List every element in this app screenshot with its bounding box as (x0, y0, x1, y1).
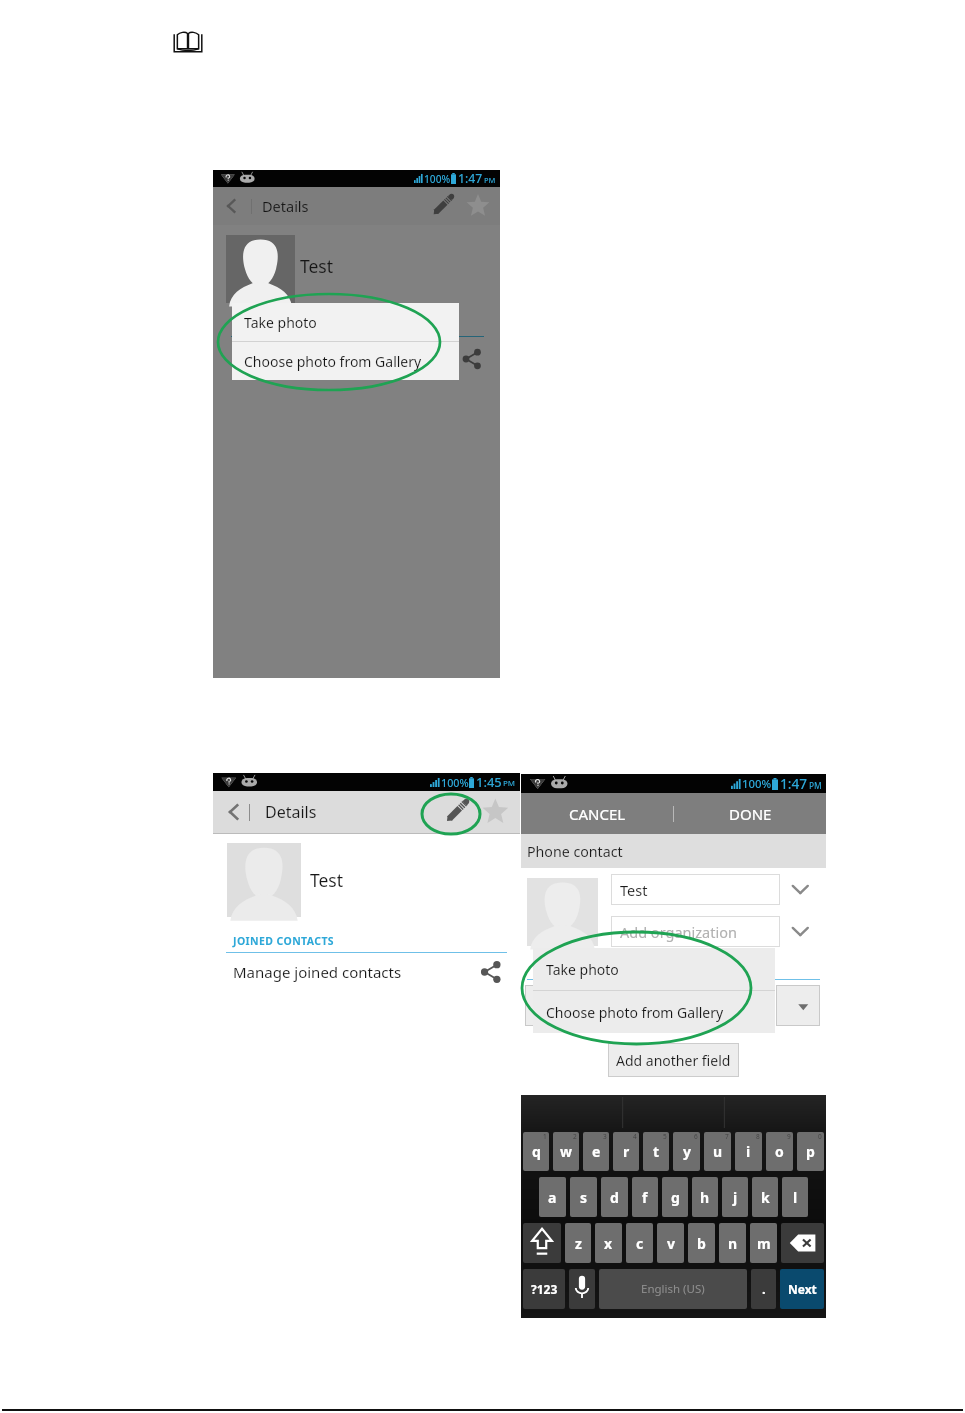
button[interactable]: Take photo (232, 303, 459, 341)
button[interactable]: Label dropdown (776, 985, 820, 1026)
button[interactable]: Expand organization (783, 916, 819, 947)
button[interactable]: x (595, 1223, 622, 1263)
button[interactable]: Voice input (569, 1269, 595, 1309)
staticText: Details (265, 801, 317, 823)
button[interactable]: d (601, 1177, 628, 1217)
button[interactable]: 1 (523, 1132, 549, 1171)
button[interactable]: Add organization (611, 916, 780, 947)
button[interactable]: Back (213, 791, 249, 833)
staticText: 100% (424, 172, 451, 186)
staticText: i (746, 1142, 751, 1161)
staticText: 2 (573, 1132, 577, 1141)
button[interactable]: Test (611, 874, 780, 905)
staticText: v (667, 1234, 675, 1253)
staticText: 1 (543, 1132, 547, 1141)
button[interactable]: s (570, 1177, 597, 1217)
button[interactable]: Favorite (476, 791, 520, 833)
button[interactable]: Back (213, 187, 251, 225)
button[interactable]: z (565, 1223, 591, 1263)
staticText: k (761, 1188, 770, 1207)
button[interactable]: Add another field (608, 1043, 739, 1077)
button[interactable]: 4 (613, 1132, 639, 1171)
staticText: PM (484, 175, 496, 185)
button[interactable]: 9 (766, 1132, 793, 1171)
staticText: y (683, 1142, 691, 1161)
staticText: 0 (818, 1132, 822, 1141)
staticText: 9 (787, 1132, 791, 1141)
button[interactable]: ?123 (523, 1269, 565, 1309)
button[interactable]: English (US) (599, 1269, 747, 1309)
staticText: x (604, 1234, 613, 1253)
button[interactable]: DONE (674, 793, 826, 834)
button[interactable]: b (688, 1223, 715, 1263)
staticText: Take photo (546, 960, 619, 979)
staticText: ?123 (531, 1281, 558, 1297)
button[interactable]: Edit (436, 791, 476, 833)
staticText: Details (262, 196, 309, 216)
staticText: h (700, 1188, 710, 1207)
button[interactable]: k (752, 1177, 778, 1217)
button[interactable]: Manage joined contacts (213, 956, 520, 988)
button[interactable]: j (722, 1177, 748, 1217)
staticText: 100% (742, 776, 772, 792)
staticText: s (580, 1188, 588, 1207)
button[interactable]: c (626, 1223, 653, 1263)
staticText: JOINED CONTACTS (234, 322, 331, 336)
button[interactable]: Manage joined contacts (213, 343, 500, 375)
button[interactable]: 6 (673, 1132, 700, 1171)
button[interactable]: . (751, 1269, 776, 1309)
staticText: DONE (729, 804, 772, 824)
staticText: Choose photo from Gallery (546, 1003, 724, 1022)
staticText: Test (300, 254, 334, 278)
staticText: Test (620, 880, 648, 900)
button[interactable] (525, 985, 645, 1026)
staticText: Test (310, 868, 344, 892)
button[interactable]: Backspace (781, 1223, 824, 1263)
button[interactable]: 0 (797, 1132, 824, 1171)
staticText: t (653, 1142, 660, 1161)
button[interactable]: m (750, 1223, 777, 1263)
button[interactable]: Edit (424, 187, 460, 225)
button[interactable]: h (692, 1177, 718, 1217)
staticText: d (610, 1188, 619, 1207)
button[interactable]: f (632, 1177, 658, 1217)
staticText: English (US) (641, 1281, 705, 1297)
staticText: r (623, 1142, 630, 1161)
button[interactable]: Choose photo from Gallery (232, 342, 459, 380)
button[interactable]: Expand name (783, 874, 819, 905)
button[interactable]: v (657, 1223, 684, 1263)
button[interactable]: n (719, 1223, 746, 1263)
staticText: a (548, 1188, 557, 1207)
staticText: 8 (756, 1132, 760, 1141)
staticText: p (806, 1142, 815, 1161)
button[interactable]: 3 (583, 1132, 609, 1171)
staticText: Choose photo from Gallery (244, 352, 422, 371)
staticText: f (642, 1188, 648, 1207)
button[interactable]: a (539, 1177, 566, 1217)
staticText: JOINED CONTACTS (233, 934, 335, 948)
button[interactable]: 2 (553, 1132, 579, 1171)
staticText: e (592, 1142, 601, 1161)
staticText: b (697, 1234, 706, 1253)
staticText: Manage joined contacts (233, 962, 402, 982)
staticText: m (757, 1234, 771, 1253)
button[interactable]: 5 (643, 1132, 669, 1171)
button[interactable]: Shift (523, 1223, 561, 1263)
button[interactable]: Favorite (460, 187, 500, 225)
staticText: g (671, 1188, 680, 1207)
staticText: c (636, 1234, 644, 1253)
button[interactable]: 8 (735, 1132, 762, 1171)
staticText: 100% (441, 775, 469, 790)
button[interactable]: 7 (704, 1132, 731, 1171)
button[interactable]: CANCEL (521, 793, 673, 834)
button[interactable]: g (662, 1177, 688, 1217)
button[interactable]: Next (780, 1269, 824, 1309)
staticText: Add another field (616, 1051, 731, 1070)
staticText: 3 (603, 1132, 607, 1141)
staticText: Manage joined contacts (234, 350, 391, 369)
button[interactable]: Choose photo from Gallery (533, 991, 775, 1033)
button[interactable]: l (782, 1177, 808, 1217)
staticText: 1:47 (458, 170, 483, 187)
staticText: 5 (663, 1132, 667, 1141)
button[interactable]: Take photo (533, 948, 775, 990)
